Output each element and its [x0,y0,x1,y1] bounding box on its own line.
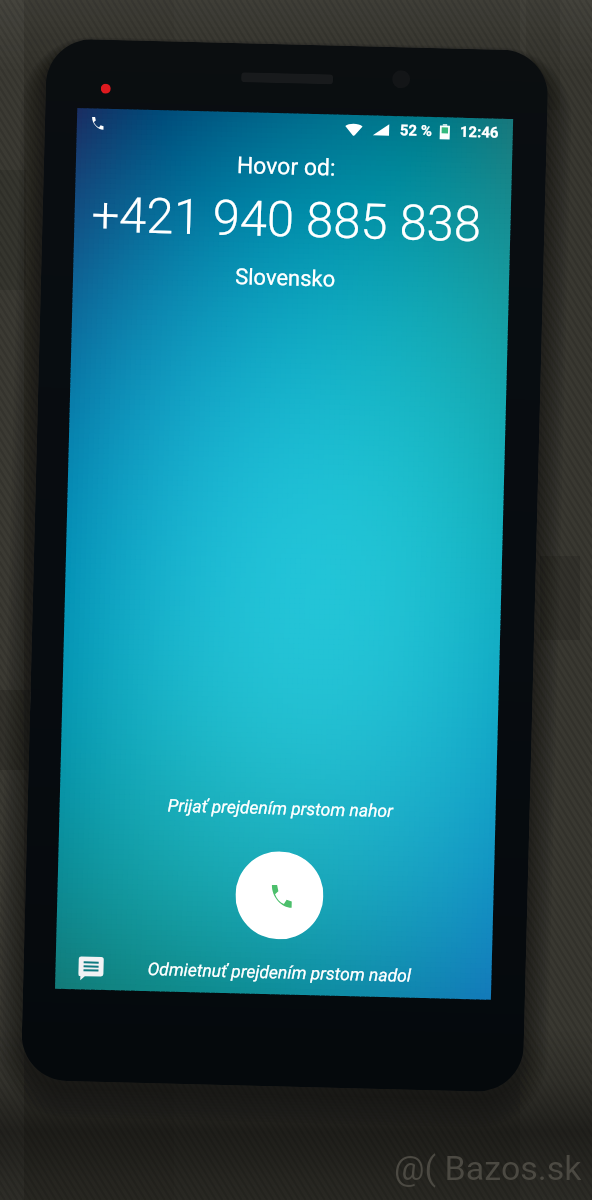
staticText: 12:46 [460,123,499,142]
button[interactable]: Reply with message [75,953,106,984]
other: Ongoing call [89,115,104,131]
staticText: 52 % [400,121,433,140]
staticText: Hovor od: [237,152,336,182]
staticText: @( Bazos.sk [394,1148,582,1188]
staticText: Prijať prejdením prstom nahor [167,795,394,822]
staticText: Odmietnuť prejdením prstom nadol [147,959,412,987]
staticText: +421 940 885 838 [91,186,482,253]
button[interactable]: Answer call [234,850,324,940]
staticText: Slovensko [235,264,336,293]
